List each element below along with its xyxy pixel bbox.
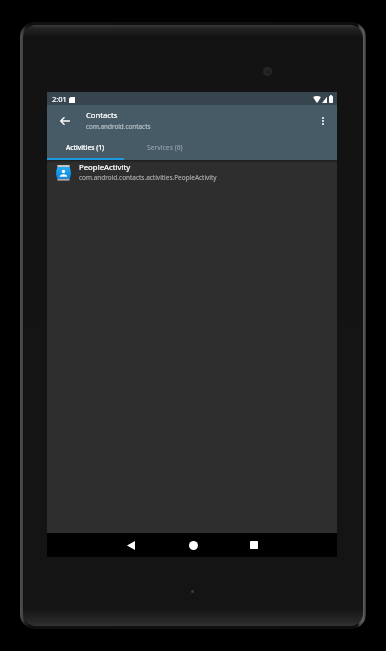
button[interactable]: PeopleActivity [47,163,337,186]
staticText: com.android.contacts.activities.PeopleAc… [79,173,217,182]
button[interactable]: Back [119,533,143,557]
staticText: Services (6) [147,143,183,152]
button[interactable]: Home [181,533,205,557]
button[interactable]: Recents [242,533,266,557]
staticText: Contacts [86,110,118,120]
button[interactable]: Back [52,108,78,134]
staticText: Activities (1) [66,143,105,152]
button[interactable]: More options [310,108,336,134]
staticText: 2:01 [52,94,67,104]
staticText: com.android.contacts [86,122,151,131]
staticText: PeopleActivity [79,162,131,173]
button[interactable]: Activities (1) [47,136,124,160]
button[interactable]: Services (6) [124,136,201,160]
